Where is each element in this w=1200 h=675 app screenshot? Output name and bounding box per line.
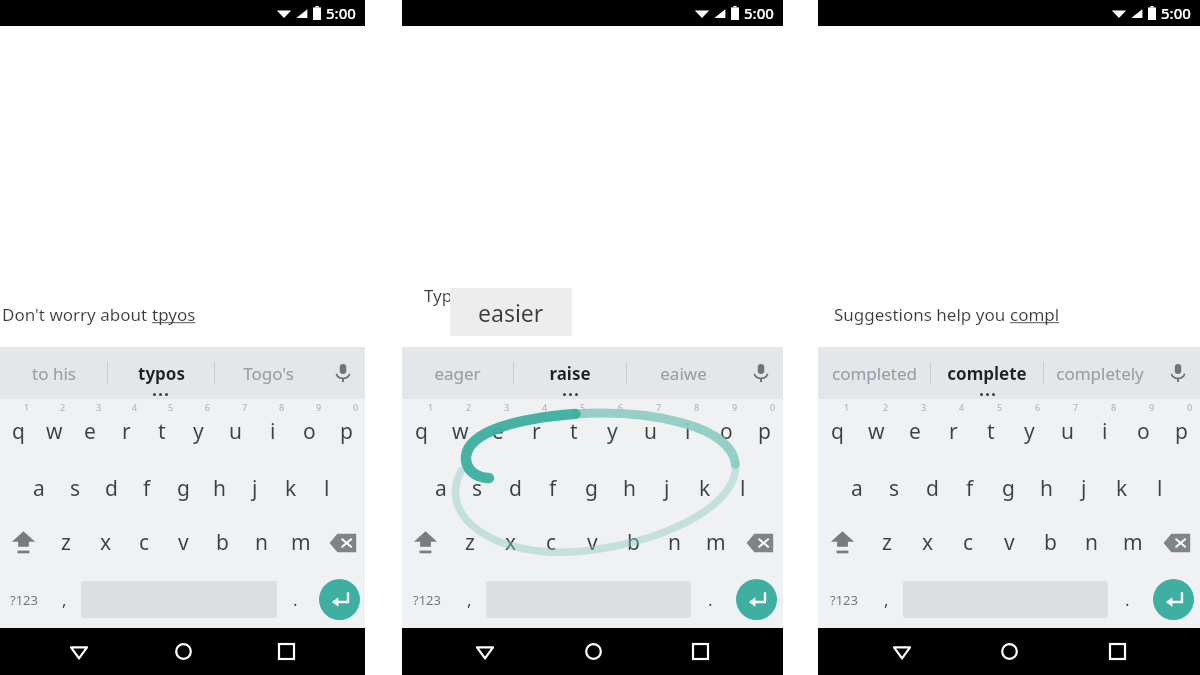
button[interactable]: Delete [736, 514, 783, 571]
button[interactable]: ?123 [0, 571, 48, 628]
button[interactable]: 2 [441, 399, 479, 457]
button[interactable]: Shift [0, 514, 46, 571]
button[interactable]: ?123 [402, 571, 452, 628]
button[interactable]: 8 [254, 399, 291, 457]
button[interactable]: 7 [631, 399, 669, 457]
button[interactable]: d [93, 457, 129, 514]
button[interactable]: Back [55, 628, 103, 675]
button[interactable]: x [86, 514, 125, 571]
button[interactable]: a [422, 457, 459, 514]
button[interactable]: . [691, 571, 729, 628]
button[interactable]: s [57, 457, 93, 514]
button[interactable]: 6 [1010, 399, 1048, 457]
button[interactable]: ?123 [818, 571, 869, 628]
button[interactable]: h [610, 457, 648, 514]
button[interactable]: a [21, 457, 57, 514]
button[interactable]: v [572, 514, 613, 571]
button[interactable]: b [1030, 514, 1071, 571]
button[interactable]: l [1141, 457, 1179, 514]
button[interactable]: d [496, 457, 534, 514]
button[interactable]: s [459, 457, 496, 514]
button[interactable]: to his [0, 347, 107, 399]
button[interactable]: Voice input [739, 347, 783, 399]
button[interactable]: n [654, 514, 695, 571]
button[interactable]: Home [159, 628, 207, 675]
button[interactable]: z [46, 514, 86, 571]
button[interactable]: 7 [1048, 399, 1086, 457]
button[interactable]: . [1108, 571, 1146, 628]
button[interactable]: Enter [1153, 579, 1194, 620]
button[interactable]: a [838, 457, 875, 514]
button[interactable]: 9 [707, 399, 745, 457]
button[interactable]: 0 [328, 399, 365, 457]
button[interactable]: 1 [818, 399, 857, 457]
button[interactable]: x [907, 514, 948, 571]
button[interactable]: Voice input [321, 347, 365, 399]
button[interactable]: Home [569, 628, 617, 675]
button[interactable]: Togo's [215, 347, 321, 399]
button[interactable]: f [534, 457, 572, 514]
button[interactable]: raise [514, 347, 626, 399]
button[interactable]: c [948, 514, 989, 571]
button[interactable]: x [490, 514, 531, 571]
button[interactable]: j [648, 457, 686, 514]
button[interactable]: l [724, 457, 762, 514]
button[interactable]: 3 [896, 399, 934, 457]
button[interactable]: Delete [1153, 514, 1200, 571]
button[interactable]: Back [461, 628, 509, 675]
button[interactable]: j [1065, 457, 1103, 514]
button[interactable]: k [273, 457, 309, 514]
button[interactable]: b [613, 514, 654, 571]
button[interactable]: c [531, 514, 572, 571]
button[interactable]: f [129, 457, 165, 514]
button[interactable]: 5 [972, 399, 1010, 457]
button[interactable]: , [452, 571, 486, 628]
button[interactable]: 1 [0, 399, 36, 457]
button[interactable]: z [449, 514, 490, 571]
button[interactable]: , [48, 571, 81, 628]
button[interactable]: k [1103, 457, 1141, 514]
button[interactable]: 3 [72, 399, 108, 457]
button[interactable]: 4 [108, 399, 144, 457]
button[interactable]: completely [1044, 347, 1156, 399]
button[interactable]: Delete [320, 514, 365, 571]
button[interactable]: 8 [669, 399, 707, 457]
button[interactable]: 0 [745, 399, 783, 457]
button[interactable]: . [277, 571, 313, 628]
button[interactable]: 7 [217, 399, 254, 457]
button[interactable]: 8 [1086, 399, 1124, 457]
button[interactable]: 5 [555, 399, 593, 457]
button[interactable]: b [203, 514, 242, 571]
button[interactable]: g [989, 457, 1027, 514]
button[interactable]: complete [931, 347, 1043, 399]
button[interactable]: 3 [479, 399, 517, 457]
button[interactable]: , [869, 571, 903, 628]
button[interactable]: Recents [262, 628, 310, 675]
button[interactable]: h [1027, 457, 1065, 514]
button[interactable]: 5 [144, 399, 180, 457]
button[interactable]: eaiwe [627, 347, 739, 399]
button[interactable]: typos [108, 347, 214, 399]
button[interactable]: eager [402, 347, 513, 399]
button[interactable]: m [281, 514, 320, 571]
button[interactable]: 2 [857, 399, 896, 457]
button[interactable]: Shift [818, 514, 866, 571]
button[interactable]: f [951, 457, 989, 514]
button[interactable]: Shift [402, 514, 449, 571]
button[interactable]: Voice input [1156, 347, 1200, 399]
button[interactable]: c [125, 514, 164, 571]
button[interactable]: k [686, 457, 724, 514]
button[interactable]: Back [878, 628, 926, 675]
button[interactable]: 4 [934, 399, 972, 457]
button[interactable]: 0 [1162, 399, 1200, 457]
button[interactable]: d [913, 457, 951, 514]
button[interactable]: Recents [676, 628, 724, 675]
button[interactable]: n [1071, 514, 1112, 571]
button[interactable]: 9 [291, 399, 328, 457]
button[interactable]: 6 [593, 399, 631, 457]
button[interactable]: h [201, 457, 237, 514]
button[interactable]: Home [985, 628, 1033, 675]
